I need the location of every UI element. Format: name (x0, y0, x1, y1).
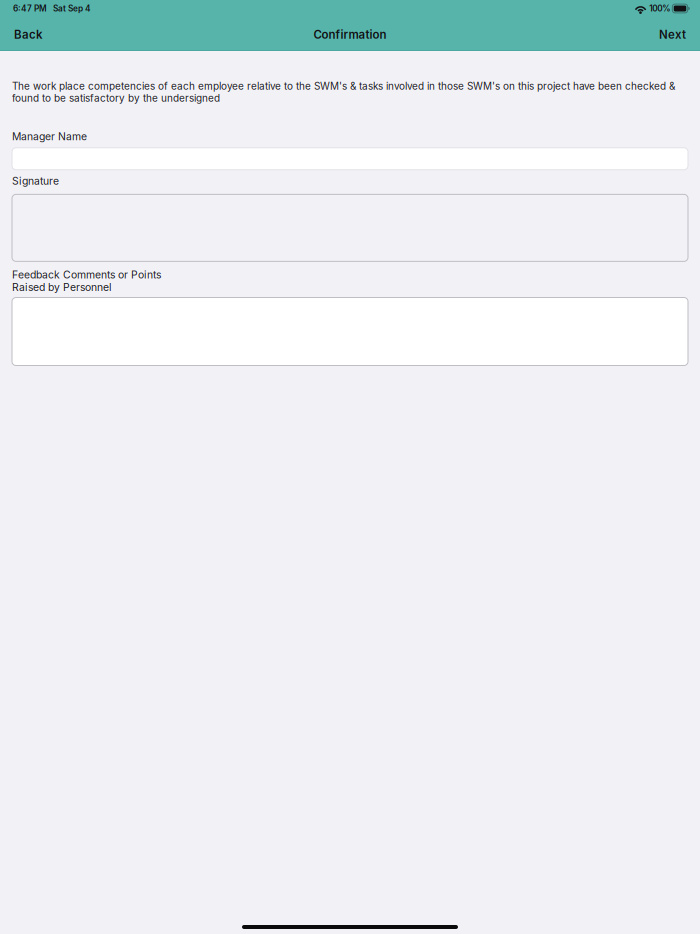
staticText: The work place competencies of each empl… (12, 80, 675, 104)
staticText: 6:47 PM (13, 3, 47, 13)
button[interactable]: Back (0, 20, 57, 47)
staticText: Confirmation (313, 28, 386, 41)
staticText: Feedback Comments or Points Raised by Pe… (12, 268, 161, 294)
button[interactable]: Manager Name (12, 148, 688, 170)
staticText: Sat Sep 4 (53, 3, 91, 13)
staticText: Manager Name (12, 130, 87, 143)
button[interactable]: Next (645, 20, 700, 47)
button[interactable]: Signature (12, 194, 688, 261)
staticText: Next (659, 28, 686, 41)
staticText: Signature (12, 175, 59, 187)
button[interactable]: Feedback Comments or Points Raised by Pe… (12, 297, 688, 365)
staticText: 100% (649, 3, 670, 13)
staticText: Back (14, 28, 43, 41)
